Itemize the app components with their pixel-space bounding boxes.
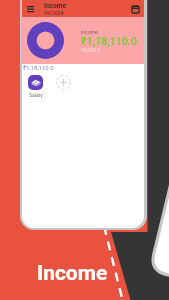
staticText: 94,033.0 [81,47,101,53]
staticText: ₹1,18,110.0 [81,35,137,47]
staticText: Income [81,29,98,35]
staticText: 09/2024 [44,10,64,16]
staticText: ₹1,18,110.0 [23,64,54,71]
button[interactable]: Menu [25,2,36,15]
staticText: Salary [29,92,43,98]
button[interactable]: Add category [56,75,71,90]
button[interactable] [28,75,43,90]
staticText: Income [37,261,108,286]
button[interactable]: Calendar [130,2,141,15]
staticText: Income [44,2,67,10]
